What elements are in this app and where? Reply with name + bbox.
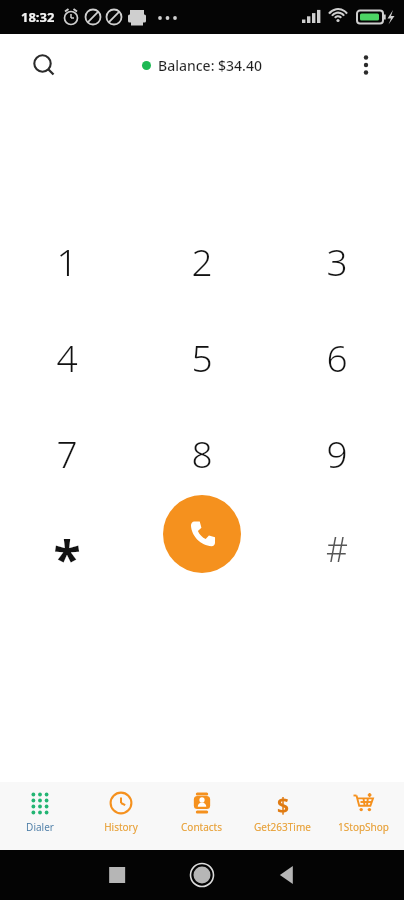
button[interactable]: * [0, 501, 134, 597]
staticText: 4 [56, 332, 78, 382]
staticText: 1StopShop [338, 820, 389, 834]
staticText: 9 [326, 428, 348, 478]
button[interactable]: 0 [134, 501, 269, 597]
staticText: # [326, 526, 348, 572]
staticText: Balance: $34.40 [158, 56, 262, 75]
button[interactable]: Contacts [161, 782, 242, 850]
staticText: Contacts [181, 820, 222, 834]
staticText: * [53, 524, 81, 592]
button[interactable]: 9 [269, 405, 404, 501]
button[interactable]: Search [20, 41, 68, 89]
button[interactable]: History [80, 782, 161, 850]
staticText: 6 [326, 332, 348, 382]
button[interactable]: 1StopShop [323, 782, 404, 850]
button[interactable]: More options [344, 43, 388, 87]
staticText: 3 [326, 236, 348, 286]
staticText: 7 [56, 428, 78, 478]
staticText: Dialer [26, 820, 54, 834]
button[interactable]: 7 [0, 405, 134, 501]
button[interactable]: 1 [0, 213, 134, 309]
staticText: 8 [191, 428, 213, 478]
staticText: 18:32 [21, 8, 55, 26]
staticText: History [104, 820, 138, 834]
button[interactable]: 8 [134, 405, 269, 501]
button[interactable]: Dialer [0, 782, 80, 850]
staticText: Get263Time [254, 820, 311, 834]
button[interactable]: 5 [134, 309, 269, 405]
button[interactable]: 6 [269, 309, 404, 405]
staticText: 1 [56, 236, 78, 286]
button[interactable]: 2 [134, 213, 269, 309]
button[interactable]: 3 [269, 213, 404, 309]
button[interactable]: # [269, 501, 404, 597]
staticText: 5 [191, 332, 213, 382]
staticText: 2 [191, 236, 213, 286]
button[interactable]: 4 [0, 309, 134, 405]
button[interactable]: $ [242, 782, 323, 850]
staticText: 0 [191, 524, 213, 574]
staticText: $ [277, 791, 290, 815]
button[interactable]: Balance: $34.40 [134, 50, 270, 81]
button[interactable]: Call [163, 495, 241, 573]
